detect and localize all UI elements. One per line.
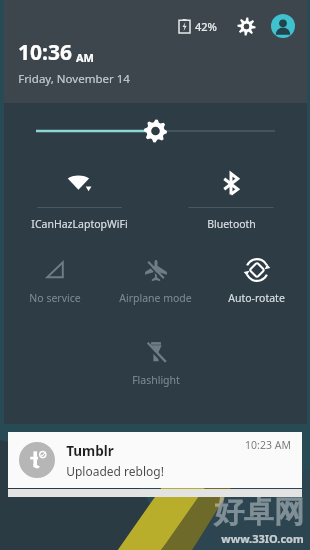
staticText: No service [29, 291, 81, 305]
button[interactable]: No service [4, 243, 105, 325]
staticText: 10:23 AM [245, 438, 291, 452]
button[interactable]: Tumblr [8, 432, 302, 488]
button[interactable]: Bluetooth [155, 159, 307, 243]
staticText: Uploaded reblog! [66, 463, 164, 479]
staticText: Airplane mode [119, 291, 192, 305]
staticText: 好卓网 [214, 493, 304, 531]
button[interactable]: Auto-rotate [206, 243, 307, 325]
staticText: Auto-rotate [228, 291, 285, 305]
staticText: Flashlight [132, 373, 180, 387]
staticText: ICanHazLaptopWiFi [31, 217, 128, 231]
button[interactable]: Airplane mode [105, 243, 206, 325]
button[interactable]: Flashlight [105, 325, 206, 407]
staticText: Tumblr [66, 442, 114, 460]
staticText: 42% [195, 19, 217, 34]
staticText: 10:36 [18, 38, 72, 67]
staticText: www.33IO.com [221, 531, 304, 546]
button[interactable]: Brightness [4, 103, 307, 159]
button[interactable]: Settings [233, 13, 259, 39]
staticText: Friday, November 14 [18, 71, 130, 87]
button[interactable]: ICanHazLaptopWiFi [4, 159, 155, 243]
staticText: Bluetooth [207, 217, 256, 231]
button[interactable]: User profile [269, 12, 297, 40]
staticText: AM [76, 50, 94, 65]
